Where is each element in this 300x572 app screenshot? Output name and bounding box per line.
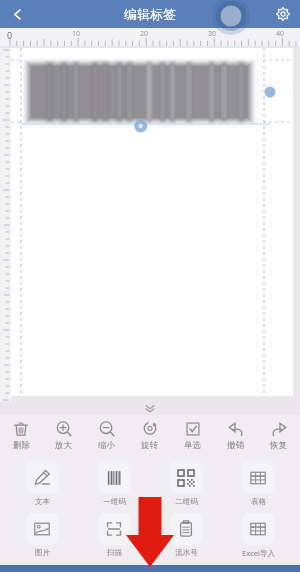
staticText: 单选 bbox=[184, 440, 201, 451]
button[interactable]: Excel导入 bbox=[222, 513, 294, 558]
staticText: 恢复 bbox=[270, 440, 287, 451]
staticText: 二维码 bbox=[175, 497, 198, 506]
button[interactable]: 表格 bbox=[222, 462, 294, 506]
button[interactable]: 旋转 bbox=[128, 415, 171, 457]
staticText: 表格 bbox=[251, 497, 266, 506]
button[interactable]: 恢复 bbox=[257, 415, 300, 457]
button[interactable] bbox=[11, 48, 293, 396]
button[interactable]: Settings bbox=[266, 0, 300, 28]
staticText: 编辑标签 bbox=[124, 6, 176, 22]
button[interactable]: 扫描 bbox=[78, 513, 150, 557]
button[interactable]: 撤销 bbox=[214, 415, 257, 457]
staticText: 图片 bbox=[35, 548, 50, 557]
staticText: 一维码 bbox=[103, 497, 126, 506]
button[interactable]: 二维码 bbox=[150, 462, 222, 506]
staticText: 缩小 bbox=[98, 440, 115, 451]
button[interactable]: 图片 bbox=[6, 513, 78, 557]
staticText: 30 bbox=[208, 29, 217, 39]
button[interactable]: Back bbox=[0, 0, 34, 28]
staticText: 10 bbox=[72, 29, 81, 39]
button[interactable]: 文本 bbox=[6, 462, 78, 506]
staticText: 撤销 bbox=[227, 440, 244, 451]
staticText: 旋转 bbox=[141, 440, 158, 451]
staticText: 0 bbox=[7, 29, 13, 41]
staticText: 删除 bbox=[13, 440, 30, 451]
staticText: 40 bbox=[276, 29, 285, 39]
button[interactable]: 删除 bbox=[0, 415, 42, 457]
staticText: 放大 bbox=[55, 440, 72, 451]
button[interactable]: 流水号 bbox=[150, 513, 222, 557]
button[interactable]: 一维码 bbox=[78, 462, 150, 506]
staticText: 20 bbox=[140, 29, 149, 39]
button[interactable]: 放大 bbox=[42, 415, 85, 457]
staticText: 扫描 bbox=[107, 548, 122, 557]
staticText: Excel导入 bbox=[242, 548, 275, 558]
button[interactable]: 单选 bbox=[171, 415, 214, 457]
button[interactable]: Collapse panel bbox=[0, 402, 300, 415]
button[interactable]: 缩小 bbox=[85, 415, 128, 457]
staticText: 流水号 bbox=[175, 548, 198, 557]
staticText: 文本 bbox=[35, 497, 50, 506]
